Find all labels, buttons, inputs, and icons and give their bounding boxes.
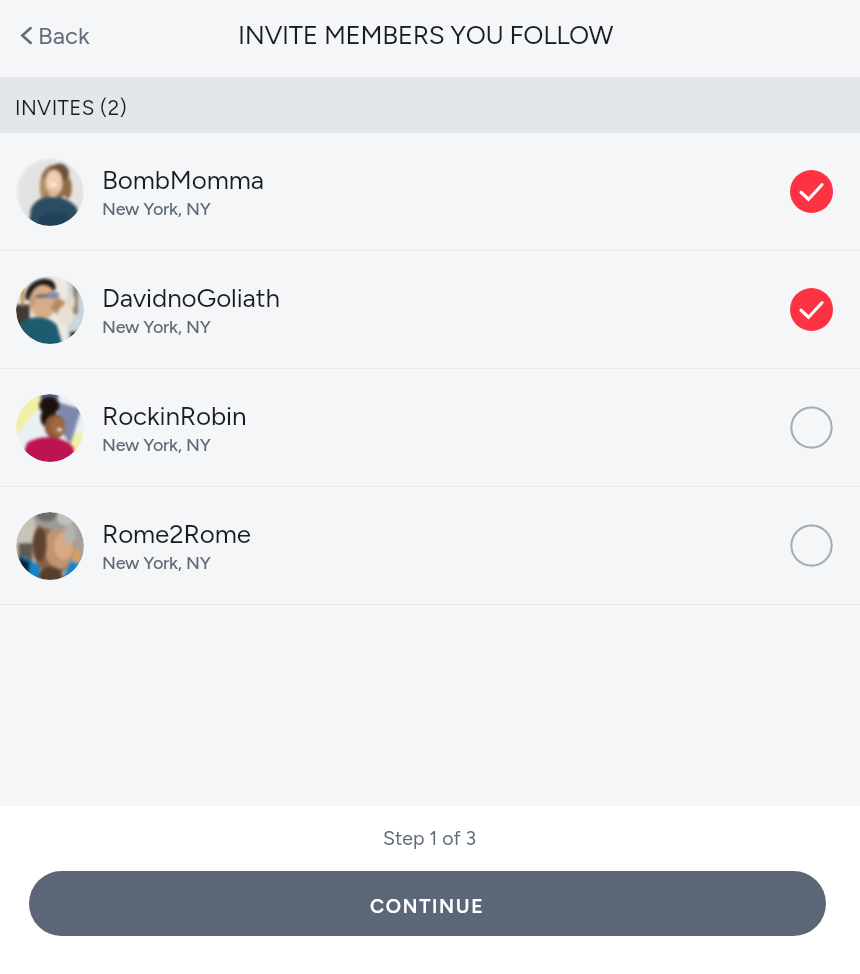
staticText: New York, NY [102, 552, 211, 574]
button[interactable]: BombMomma [0, 133, 860, 250]
button[interactable]: Invite selected [790, 288, 833, 331]
button[interactable]: RockinRobin [0, 369, 860, 486]
button[interactable]: Invite selected [790, 170, 833, 213]
button[interactable]: Rome2Rome [0, 487, 860, 604]
button[interactable]: Invite not selected [790, 406, 833, 449]
button[interactable]: Back [8, 11, 104, 60]
staticText: DavidnoGoliath [102, 282, 280, 313]
staticText: INVITE MEMBERS YOU FOLLOW [238, 19, 614, 50]
staticText: Step 1 of 3 [383, 826, 477, 849]
button[interactable]: CONTINUE [29, 871, 826, 936]
staticText: New York, NY [102, 198, 211, 220]
staticText: New York, NY [102, 316, 211, 338]
staticText: INVITES (2) [15, 96, 128, 121]
staticText: BombMomma [102, 164, 264, 195]
staticText: Rome2Rome [102, 518, 251, 549]
staticText: Back [38, 21, 90, 50]
staticText: New York, NY [102, 434, 211, 456]
staticText: RockinRobin [102, 400, 247, 431]
button[interactable]: Invite not selected [790, 524, 833, 567]
staticText: CONTINUE [370, 894, 485, 917]
button[interactable]: DavidnoGoliath [0, 251, 860, 368]
